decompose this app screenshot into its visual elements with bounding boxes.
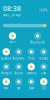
staticText: Eye	[17, 86, 21, 90]
button[interactable]: 3D	[40, 78, 47, 90]
staticText: Airplane	[13, 57, 25, 60]
staticText: NFC	[4, 86, 9, 90]
staticText: 08:38	[3, 4, 21, 13]
staticText: 3D	[42, 86, 46, 90]
staticText: Rotate	[39, 57, 48, 60]
staticText: Hotspot	[1, 71, 12, 75]
button[interactable]: Torch	[28, 48, 35, 60]
button[interactable]: Location	[1, 48, 12, 60]
staticText: Mon, 24 Apr	[3, 13, 21, 17]
staticText: Cast	[41, 71, 46, 75]
button[interactable]: Eye	[15, 78, 22, 90]
staticText: 100%	[39, 9, 47, 12]
button[interactable]: Dark	[28, 78, 35, 90]
button[interactable]: Hotspot	[1, 63, 12, 75]
staticText: Location	[1, 57, 12, 60]
staticText: Dark	[29, 86, 34, 90]
button[interactable]: Bluetooth	[30, 32, 45, 44]
button[interactable]: Cast	[40, 63, 47, 75]
button[interactable]: Battery	[27, 63, 36, 75]
button[interactable]: NFC	[3, 78, 10, 90]
button[interactable]: Wi-Fi	[9, 32, 16, 44]
staticText: Torch	[28, 57, 35, 60]
staticText: Battery	[27, 71, 36, 75]
button[interactable]: Sound	[14, 63, 23, 75]
staticText: Wi-Fi	[9, 41, 15, 44]
button[interactable]: Rotate	[39, 48, 48, 60]
staticText: Bluetooth	[30, 41, 45, 44]
staticText: Sound	[14, 71, 23, 75]
button[interactable]: Airplane	[13, 48, 25, 60]
